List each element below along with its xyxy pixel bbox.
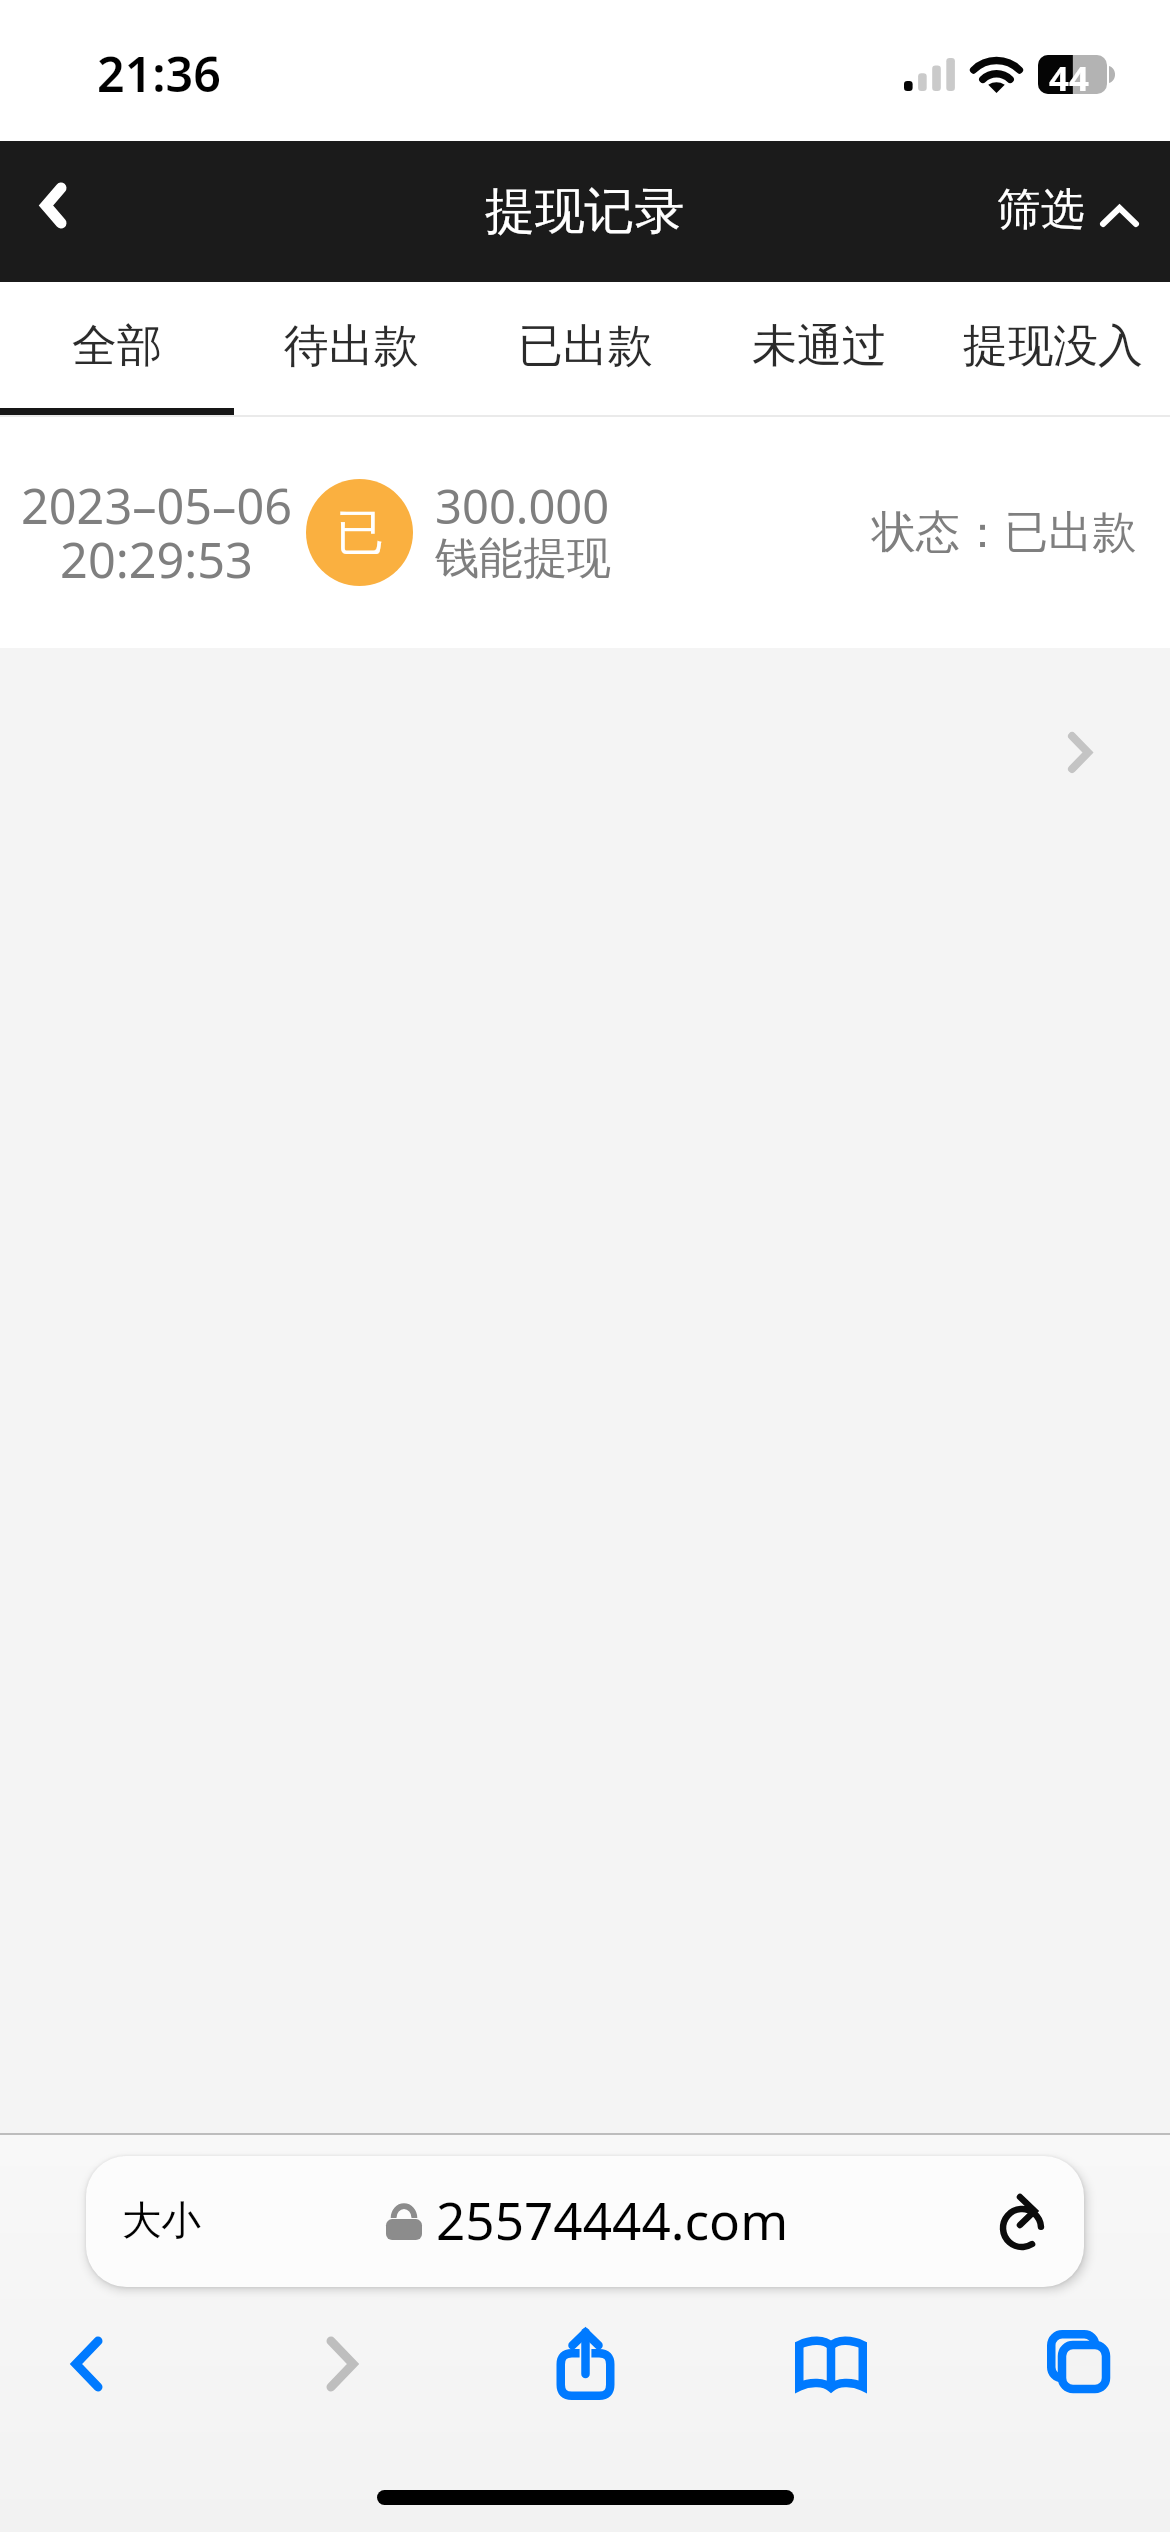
staticText: 44 [1049, 54, 1089, 93]
button[interactable]: Share [519, 2299, 651, 2428]
button[interactable]: Next page [1072, 736, 1088, 769]
staticText: 提现没入 [963, 318, 1143, 375]
button[interactable]: Back [0, 141, 107, 282]
staticText: 21:36 [97, 40, 221, 106]
staticText: 25574444.com [436, 2185, 789, 2255]
staticText: 筛选 [997, 182, 1085, 237]
staticText: 钱能提现 [435, 474, 612, 586]
button[interactable]: Bookmarks [765, 2299, 897, 2428]
button[interactable]: 待出款 [234, 282, 468, 417]
staticText: 状态：已出款 [872, 505, 1137, 561]
button[interactable]: Reload [987, 2187, 1057, 2257]
button[interactable]: 未通过 [702, 282, 936, 417]
staticText: 待出款 [284, 318, 419, 375]
button[interactable]: 筛选 [997, 141, 1136, 282]
staticText: 300.000 [435, 474, 610, 592]
staticText: 大小 [122, 2196, 202, 2246]
button[interactable]: 大小 [86, 2156, 1084, 2287]
staticText: 全部 [72, 318, 162, 375]
button[interactable]: 提现没入 [936, 282, 1170, 417]
button[interactable]: Forward [276, 2299, 408, 2428]
button[interactable]: 已出款 [468, 282, 702, 417]
button[interactable]: Tabs [1014, 2299, 1146, 2428]
staticText: 已 [336, 503, 384, 563]
button[interactable]: 全部 [0, 282, 234, 417]
staticText: 2023–05–06 20:29:53 [21, 472, 292, 593]
staticText: 已出款 [518, 318, 653, 375]
button[interactable]: 2023–05–06 20:29:53 [0, 417, 1170, 648]
staticText: 提现记录 [485, 180, 685, 243]
button[interactable]: Back [21, 2299, 153, 2428]
staticText: 未通过 [752, 318, 887, 375]
